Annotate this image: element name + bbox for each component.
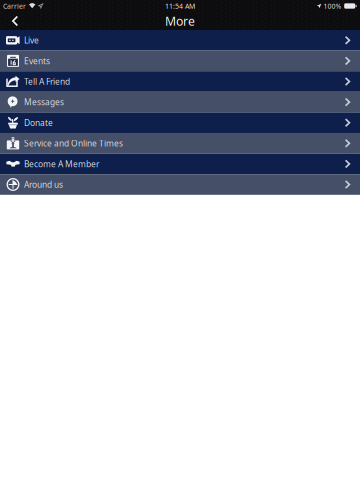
button[interactable]: Tell A Friend	[0, 71, 360, 92]
staticText: Carrier	[3, 1, 26, 11]
staticText: Donate	[24, 117, 53, 128]
button[interactable]: Donate	[0, 112, 360, 133]
staticText: Become A Member	[24, 158, 99, 170]
staticText: Live	[24, 35, 39, 46]
button[interactable]: Events	[0, 51, 360, 71]
button[interactable]: Around us	[0, 174, 360, 195]
button[interactable]: Become A Member	[0, 154, 360, 174]
staticText: 11:54 AM	[165, 1, 195, 11]
button[interactable]: Messages	[0, 92, 360, 112]
button[interactable]: Back	[0, 12, 28, 30]
staticText: Tell A Friend	[24, 76, 70, 87]
staticText: Service and Online Times	[24, 138, 123, 149]
button[interactable]: Service and Online Times	[0, 133, 360, 154]
staticText: Messages	[24, 96, 64, 108]
staticText: More	[165, 13, 195, 29]
staticText: Around us	[24, 179, 63, 190]
staticText: 100%	[323, 1, 341, 11]
button[interactable]: Live	[0, 30, 360, 51]
staticText: Events	[24, 55, 50, 67]
